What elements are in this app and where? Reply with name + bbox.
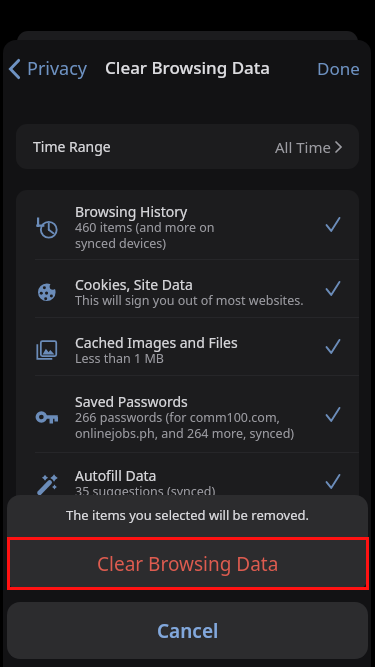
staticText: Clear Browsing Data <box>105 56 271 79</box>
button[interactable]: Privacy <box>4 50 94 87</box>
staticText: 35 suggestions (synced) <box>75 483 216 500</box>
staticText: Privacy <box>27 56 88 81</box>
button[interactable]: Cached Images and Files <box>16 318 359 375</box>
staticText: All Time <box>275 137 331 157</box>
button[interactable]: Time Range <box>16 124 359 169</box>
button[interactable]: Saved Passwords <box>16 376 359 452</box>
staticText: Cached Images and Files <box>75 333 238 352</box>
staticText: Cancel <box>157 618 219 644</box>
staticText: Autofill Data <box>75 466 157 485</box>
button[interactable]: Autofill Data <box>16 453 359 510</box>
staticText: The items you selected will be removed. <box>66 506 309 524</box>
staticText: Browsing History <box>75 202 188 221</box>
button[interactable]: Clear Browsing Data <box>7 538 368 590</box>
staticText: 266 passwords (for comm100.com, onlinejo… <box>75 409 295 442</box>
button[interactable]: Cancel <box>7 602 368 659</box>
button[interactable]: Browsing History <box>16 190 359 259</box>
button[interactable]: Done <box>303 49 371 88</box>
staticText: Less than 1 MB <box>75 350 164 367</box>
staticText: Clear Browsing Data <box>97 551 279 577</box>
staticText: Saved Passwords <box>75 392 188 411</box>
staticText: Time Range <box>33 137 111 156</box>
staticText: Cookies, Site Data <box>75 275 193 294</box>
staticText: This will sign you out of most websites. <box>75 292 304 309</box>
staticText: 460 items (and more on synced devices) <box>75 219 215 252</box>
button[interactable]: Cookies, Site Data <box>16 260 359 317</box>
